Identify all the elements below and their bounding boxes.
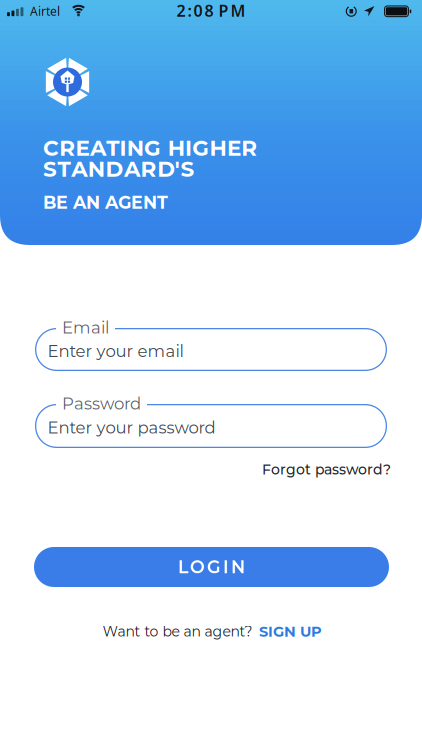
button[interactable]: Email bbox=[35, 318, 387, 371]
staticText: Password bbox=[62, 393, 141, 414]
staticText: STANDARD'S bbox=[43, 156, 194, 182]
staticText: Airtel bbox=[30, 3, 60, 19]
button[interactable]: Login bbox=[34, 547, 389, 587]
staticText: Want to be an agent? bbox=[102, 623, 252, 640]
button[interactable]: Password bbox=[35, 394, 387, 448]
staticText: 2 : 0 8 P M bbox=[176, 0, 245, 21]
staticText: CREATING HIGHER bbox=[43, 135, 257, 161]
staticText: SIGN UP bbox=[259, 623, 322, 640]
button[interactable]: SIGN UP bbox=[259, 621, 349, 641]
staticText: Enter your email bbox=[47, 341, 183, 361]
staticText: Enter your password bbox=[47, 417, 215, 437]
staticText: Email bbox=[62, 317, 109, 338]
staticText: L O G I N bbox=[178, 556, 245, 578]
button[interactable]: Forgot password? bbox=[262, 461, 391, 478]
staticText: Forgot password? bbox=[262, 461, 391, 478]
staticText: BE AN AGENT bbox=[43, 192, 168, 213]
